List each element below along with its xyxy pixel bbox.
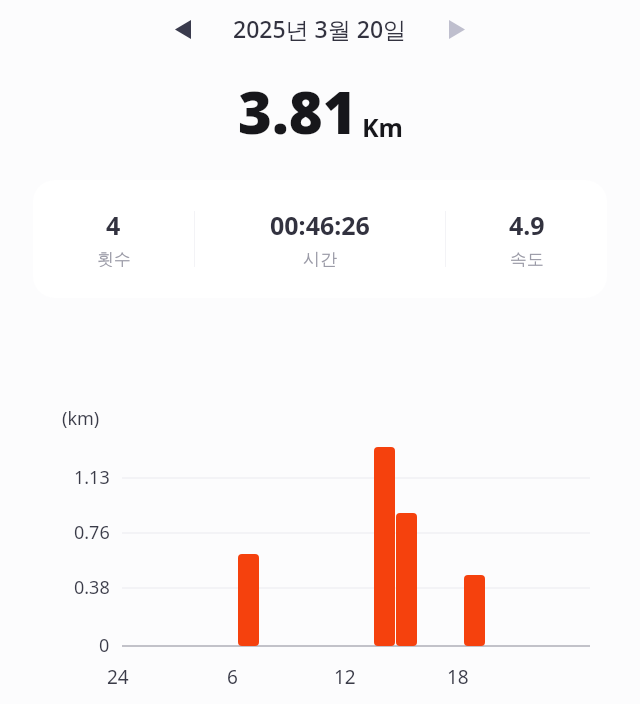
- staticText: 횟수: [97, 249, 131, 270]
- staticText: 3.81: [238, 72, 357, 151]
- staticText: Km: [362, 110, 403, 144]
- staticText: 4.9: [509, 208, 545, 242]
- staticText: 24: [107, 664, 129, 690]
- staticText: 00:46:26: [270, 208, 370, 242]
- button[interactable]: 00:46:26: [195, 180, 445, 298]
- staticText: 0.76: [74, 520, 110, 545]
- staticText: 속도: [510, 249, 544, 270]
- button[interactable]: 4: [33, 180, 194, 298]
- button[interactable]: Next day: [441, 13, 473, 45]
- button[interactable]: Previous day: [167, 13, 199, 45]
- staticText: 18: [447, 664, 469, 690]
- button[interactable]: 4.9: [446, 180, 607, 298]
- staticText: 0: [99, 633, 110, 658]
- staticText: 0.38: [74, 575, 110, 600]
- staticText: 1.13: [74, 465, 110, 490]
- staticText: 4: [106, 208, 121, 242]
- staticText: 시간: [303, 249, 337, 270]
- staticText: 12: [334, 664, 356, 690]
- button[interactable]: 4: [33, 180, 607, 298]
- staticText: (km): [62, 406, 100, 431]
- button[interactable]: 2025년 3월 20일: [233, 13, 407, 44]
- staticText: 6: [227, 664, 238, 690]
